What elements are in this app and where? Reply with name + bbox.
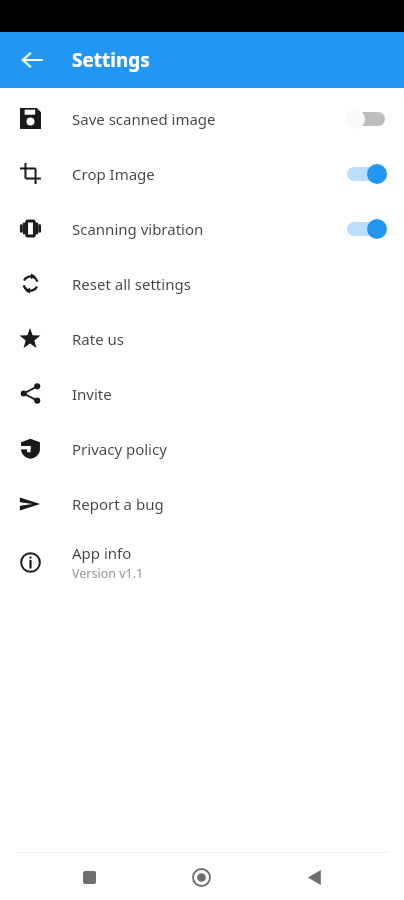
staticText: Version v1.1	[72, 565, 144, 582]
button[interactable]: Back	[291, 854, 337, 900]
button[interactable]: Crop Image	[0, 146, 404, 201]
button[interactable]: Scanning vibration	[0, 201, 404, 256]
button[interactable]: Report a bug	[0, 476, 404, 531]
button[interactable]: Reset all settings	[0, 256, 404, 311]
button[interactable]: App info	[0, 531, 404, 593]
staticText: Crop Image	[72, 164, 155, 184]
staticText: Scanning vibration	[72, 219, 204, 239]
button[interactable]: Home	[178, 854, 224, 900]
staticText: Invite	[72, 384, 112, 404]
staticText: Reset all settings	[72, 274, 191, 294]
staticText: Save scanned image	[72, 109, 216, 129]
button[interactable]: Save scanned image	[0, 91, 404, 146]
button[interactable]: Off	[342, 106, 390, 132]
button[interactable]: Back	[14, 42, 50, 78]
staticText: App info	[72, 543, 132, 563]
button[interactable]: On	[342, 216, 390, 242]
staticText: Report a bug	[72, 494, 164, 514]
staticText: Rate us	[72, 329, 124, 349]
button[interactable]: On	[342, 161, 390, 187]
staticText: Privacy policy	[72, 439, 167, 459]
button[interactable]: Recents	[66, 854, 112, 900]
staticText: Settings	[72, 47, 150, 73]
button[interactable]: Rate us	[0, 311, 404, 366]
button[interactable]: Privacy policy	[0, 421, 404, 476]
button[interactable]: Invite	[0, 366, 404, 421]
